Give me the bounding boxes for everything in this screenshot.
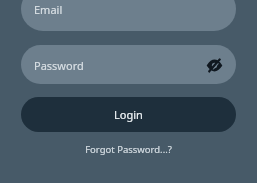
button[interactable]: Password [21, 45, 236, 84]
button[interactable]: Forgot Password...? [79, 140, 178, 159]
button[interactable]: Login [21, 97, 236, 132]
staticText: Password [34, 58, 203, 73]
staticText: Login [114, 107, 143, 122]
staticText: Email [34, 2, 63, 17]
button[interactable]: Show password [203, 54, 225, 76]
staticText: Forgot Password...? [85, 143, 172, 156]
button[interactable]: Email [21, 0, 236, 31]
